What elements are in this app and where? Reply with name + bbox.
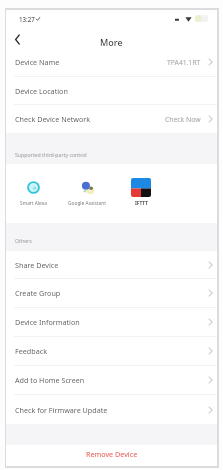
staticText: Device Information (15, 317, 80, 327)
button[interactable]: Google Assistant (60, 178, 114, 207)
staticText: More (100, 36, 123, 48)
staticText: Share Device (15, 260, 59, 270)
button[interactable]: Feedback (6, 337, 217, 366)
staticText: Check for Firmware Update (15, 405, 108, 415)
button[interactable]: Device Name (6, 48, 217, 77)
staticText: Device Name (15, 57, 60, 67)
staticText: Remove Device (86, 449, 138, 459)
staticText: Supported third-party control (15, 151, 87, 158)
staticText: Device Location (15, 86, 68, 96)
button[interactable]: Device Information (6, 308, 217, 337)
staticText: Others (15, 237, 32, 244)
staticText: Google Assistant (68, 200, 106, 207)
button[interactable]: Create Group (6, 279, 217, 308)
staticText: 13:27 (19, 15, 35, 23)
button[interactable]: Check Device Network (6, 105, 217, 133)
staticText: TPA41.1RT (167, 58, 201, 67)
button[interactable]: IFTTT (114, 178, 168, 207)
button[interactable]: Add to Home Screen (6, 366, 217, 395)
staticText: Feedback (15, 346, 47, 356)
button[interactable]: Check for Firmware Update (6, 395, 217, 424)
staticText: Add to Home Screen (15, 375, 85, 385)
button[interactable]: Device Location (6, 77, 217, 105)
staticText: Check Device Network (15, 114, 91, 124)
button[interactable]: Back (8, 30, 26, 48)
staticText: Create Group (15, 288, 61, 298)
button[interactable]: Share Device (6, 251, 217, 279)
staticText: Check Now (165, 115, 201, 124)
staticText: Smart Alexa (20, 200, 47, 207)
button[interactable]: Smart Alexa (6, 178, 60, 207)
staticText: IFTTT (135, 200, 148, 207)
button[interactable]: Remove Device (6, 445, 217, 466)
